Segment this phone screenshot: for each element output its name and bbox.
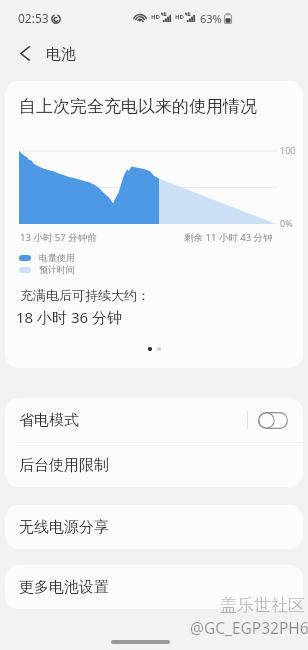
staticText: 更多电池设置 xyxy=(19,578,109,597)
staticText: 电量使用 xyxy=(39,252,75,263)
button[interactable]: 后台使用限制 xyxy=(5,443,303,487)
staticText: 0% xyxy=(280,217,293,229)
button[interactable]: 更多电池设置 xyxy=(5,565,303,609)
staticText: 省电模式 xyxy=(19,411,79,430)
staticText: 13 小时 57 分钟前 xyxy=(20,231,97,244)
staticText: 无线电源分享 xyxy=(19,518,109,537)
staticText: 剩余 11 小时 43 分钟 xyxy=(184,231,273,244)
staticText: 63% xyxy=(200,11,222,26)
staticText: 18 小时 36 分钟 xyxy=(16,307,123,327)
staticText: 预计时间 xyxy=(39,264,75,275)
staticText: 电池 xyxy=(46,45,76,64)
staticText: 充满电后可持续大约： xyxy=(20,287,150,303)
staticText: @GC_EGP32PH6 xyxy=(190,617,308,638)
staticText: HD xyxy=(151,13,160,21)
staticText: HD xyxy=(175,13,184,21)
staticText: 02:53 xyxy=(18,10,49,26)
button[interactable]: 无线电源分享 xyxy=(5,505,303,549)
staticText: 自上次完全充电以来的使用情况 xyxy=(19,96,257,117)
staticText: 盖乐世社区 xyxy=(220,595,305,616)
staticText: 100 xyxy=(280,144,296,156)
button[interactable]: Back xyxy=(8,36,42,70)
staticText: 后台使用限制 xyxy=(19,456,109,475)
button[interactable]: 省电模式 xyxy=(5,398,303,442)
